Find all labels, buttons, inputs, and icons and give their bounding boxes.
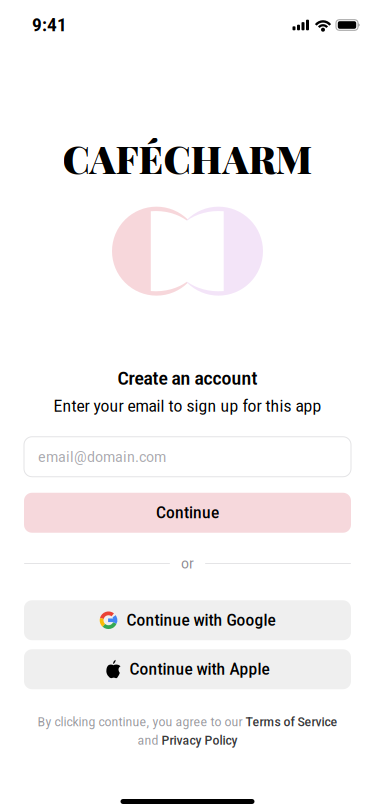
- button[interactable]: Continue with Google: [0, 600, 375, 640]
- button[interactable]: Continue: [0, 493, 375, 533]
- staticText: Enter your email to sign up for this app: [53, 396, 321, 416]
- staticText: or: [181, 555, 194, 572]
- staticText: and: [137, 733, 161, 748]
- button[interactable]: email@domain.com: [0, 437, 375, 477]
- staticText: By clicking continue, you agree to our: [37, 714, 245, 729]
- button[interactable]: Terms of Service: [245, 714, 337, 729]
- staticText: Continue: [156, 503, 219, 522]
- staticText: Continue with Google: [126, 611, 275, 630]
- staticText: Continue with Apple: [129, 660, 269, 679]
- staticText: Privacy Policy: [161, 733, 237, 748]
- staticText: 9:41: [32, 14, 67, 36]
- staticText: CAFÉCHARM: [62, 133, 312, 184]
- staticText: Terms of Service: [245, 714, 337, 729]
- button[interactable]: Continue with Apple: [0, 649, 375, 689]
- button[interactable]: Privacy Policy: [161, 733, 237, 748]
- staticText: email@domain.com: [38, 448, 166, 466]
- staticText: Create an account: [117, 368, 257, 389]
